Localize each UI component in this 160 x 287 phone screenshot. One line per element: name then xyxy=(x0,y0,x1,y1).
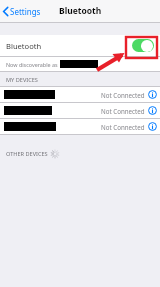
staticText: Not Connected xyxy=(101,123,145,131)
button[interactable]: Settings xyxy=(0,4,47,19)
staticText: OTHER DEVICES xyxy=(6,150,48,158)
button[interactable]: More info xyxy=(148,122,157,131)
staticText: Settings xyxy=(10,6,41,17)
staticText: Bluetooth xyxy=(59,5,102,17)
button[interactable]: More info xyxy=(148,106,157,115)
staticText: Not Connected xyxy=(101,107,145,115)
button[interactable]: Not Connected xyxy=(0,87,160,102)
staticText: Bluetooth xyxy=(6,41,42,51)
button[interactable]: More info xyxy=(148,90,157,99)
staticText: Now discoverable as xyxy=(6,61,58,68)
button[interactable]: Bluetooth xyxy=(0,35,160,56)
button[interactable]: Not Connected xyxy=(0,103,160,118)
button[interactable]: Bluetooth on xyxy=(132,39,154,52)
staticText: MY DEVICES xyxy=(6,76,38,84)
button[interactable]: Not Connected xyxy=(0,119,160,134)
staticText: Not Connected xyxy=(101,91,145,99)
